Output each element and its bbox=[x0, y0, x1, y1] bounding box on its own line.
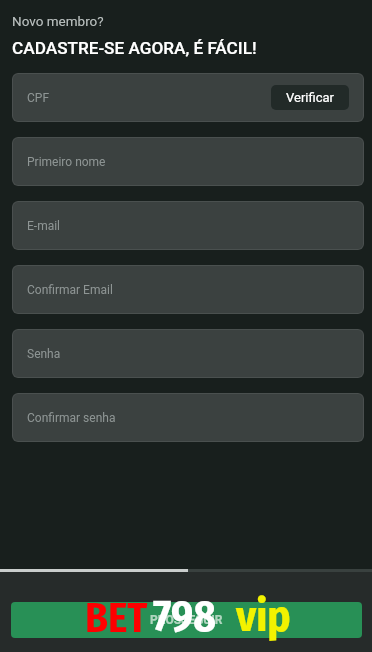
button[interactable]: Verificar bbox=[271, 85, 349, 110]
button[interactable]: Confirmar senha bbox=[12, 393, 364, 442]
staticText: Confirmar Email bbox=[27, 283, 113, 297]
button[interactable]: Primeiro nome bbox=[12, 137, 364, 186]
staticText: 798 bbox=[153, 591, 216, 643]
staticText: Primeiro nome bbox=[27, 155, 106, 169]
button[interactable]: PROSSEGUIR bbox=[11, 602, 362, 638]
other: BET798 vip bbox=[85, 594, 148, 643]
staticText: vip bbox=[236, 591, 291, 643]
staticText: Verificar bbox=[286, 90, 334, 105]
button[interactable]: CPF bbox=[12, 73, 364, 122]
staticText: CPF bbox=[27, 91, 50, 105]
staticText: BET bbox=[85, 594, 148, 643]
staticText: E-mail bbox=[27, 219, 61, 233]
button[interactable]: E-mail bbox=[12, 201, 364, 250]
staticText: CADASTRE-SE AGORA, É FÁCIL! bbox=[12, 38, 257, 58]
staticText: Senha bbox=[27, 347, 61, 361]
button[interactable]: Senha bbox=[12, 329, 364, 378]
staticText: PROSSEGUIR bbox=[150, 613, 223, 627]
staticText: Confirmar senha bbox=[27, 411, 116, 425]
staticText: Novo membro? bbox=[12, 13, 104, 29]
button[interactable]: Confirmar Email bbox=[12, 265, 364, 314]
